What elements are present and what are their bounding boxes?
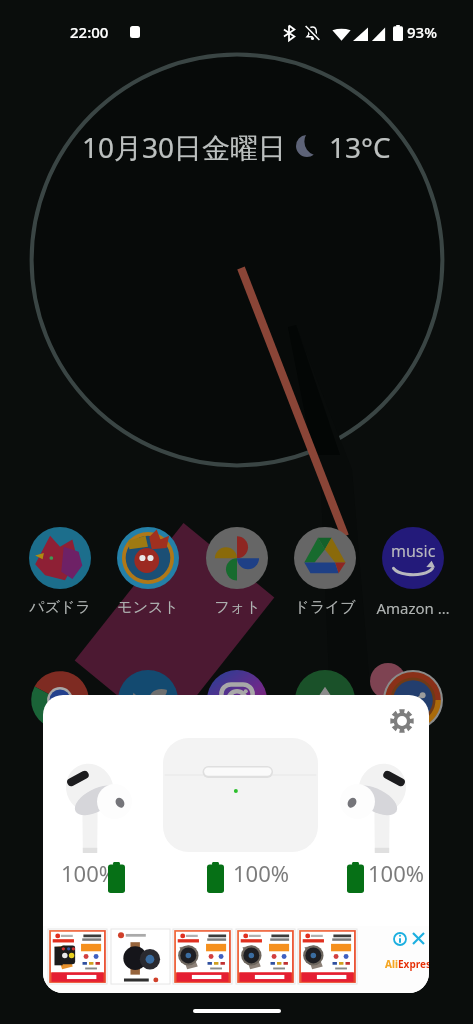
button[interactable]: ドライブ (281, 527, 369, 617)
staticText: パズドラ (29, 598, 91, 617)
staticText: 93% (407, 22, 437, 42)
button[interactable] (173, 929, 232, 984)
button[interactable]: Bank (295, 670, 355, 730)
staticText: モンスト (117, 598, 179, 617)
button[interactable]: Chrome (30, 670, 90, 730)
button[interactable]: Close ad (412, 932, 425, 945)
staticText: 10月30日金曜日 (82, 128, 287, 166)
staticText: Express (398, 957, 429, 971)
staticText: music (391, 540, 436, 562)
button[interactable] (111, 929, 170, 984)
staticText: Ali (385, 957, 398, 971)
button[interactable]: フォト (193, 527, 281, 617)
button[interactable]: Twitter (118, 670, 178, 730)
button[interactable]: Ad info (393, 932, 407, 946)
button[interactable]: Amazon … (369, 527, 457, 618)
button[interactable]: Speed test (383, 670, 443, 730)
button[interactable] (236, 929, 295, 984)
button[interactable]: モンスト (104, 527, 192, 617)
staticText: 100% (368, 858, 425, 888)
staticText: 13°C (329, 128, 391, 166)
staticText: フォト (214, 598, 261, 617)
button[interactable]: パズドラ (16, 527, 104, 617)
staticText: 100% (61, 858, 118, 888)
button[interactable] (48, 929, 107, 984)
staticText: ドライブ (294, 598, 356, 617)
staticText: 22:00 (70, 22, 109, 42)
button[interactable] (298, 929, 357, 984)
button[interactable]: Instagram (207, 670, 267, 730)
staticText: 100% (233, 858, 290, 888)
staticText: Amazon … (376, 598, 450, 618)
button[interactable]: Settings (390, 709, 414, 733)
